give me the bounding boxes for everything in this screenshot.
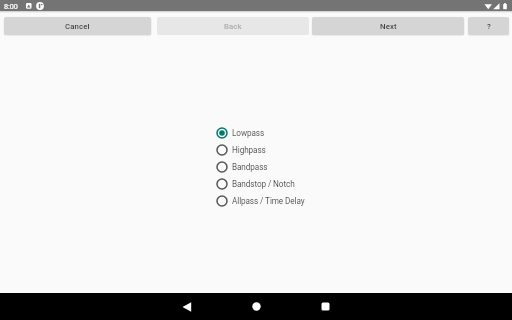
button[interactable] [236, 293, 276, 320]
button[interactable]: Allpass / Time Delay [216, 192, 305, 209]
button[interactable]: Cancel [4, 17, 151, 35]
staticText: Cancel [65, 22, 90, 31]
button[interactable]: Next [312, 17, 464, 35]
staticText: Allpass / Time Delay [232, 196, 305, 206]
button[interactable]: Lowpass [216, 124, 265, 141]
button[interactable]: Bandstop / Notch [216, 175, 295, 192]
staticText: ? [487, 22, 491, 31]
button[interactable]: ? [468, 17, 509, 35]
staticText: Lowpass [232, 128, 265, 138]
button[interactable]: Highpass [216, 141, 266, 158]
button[interactable] [305, 293, 345, 320]
staticText: 8:00 [4, 2, 18, 10]
staticText: Bandstop / Notch [232, 179, 295, 189]
staticText: Back [224, 22, 242, 31]
staticText: Next [380, 22, 397, 31]
button[interactable] [167, 293, 207, 320]
staticText: Highpass [232, 145, 266, 155]
button[interactable]: Back [157, 17, 309, 35]
staticText: Bandpass [232, 162, 268, 172]
button[interactable]: Bandpass [216, 158, 268, 175]
